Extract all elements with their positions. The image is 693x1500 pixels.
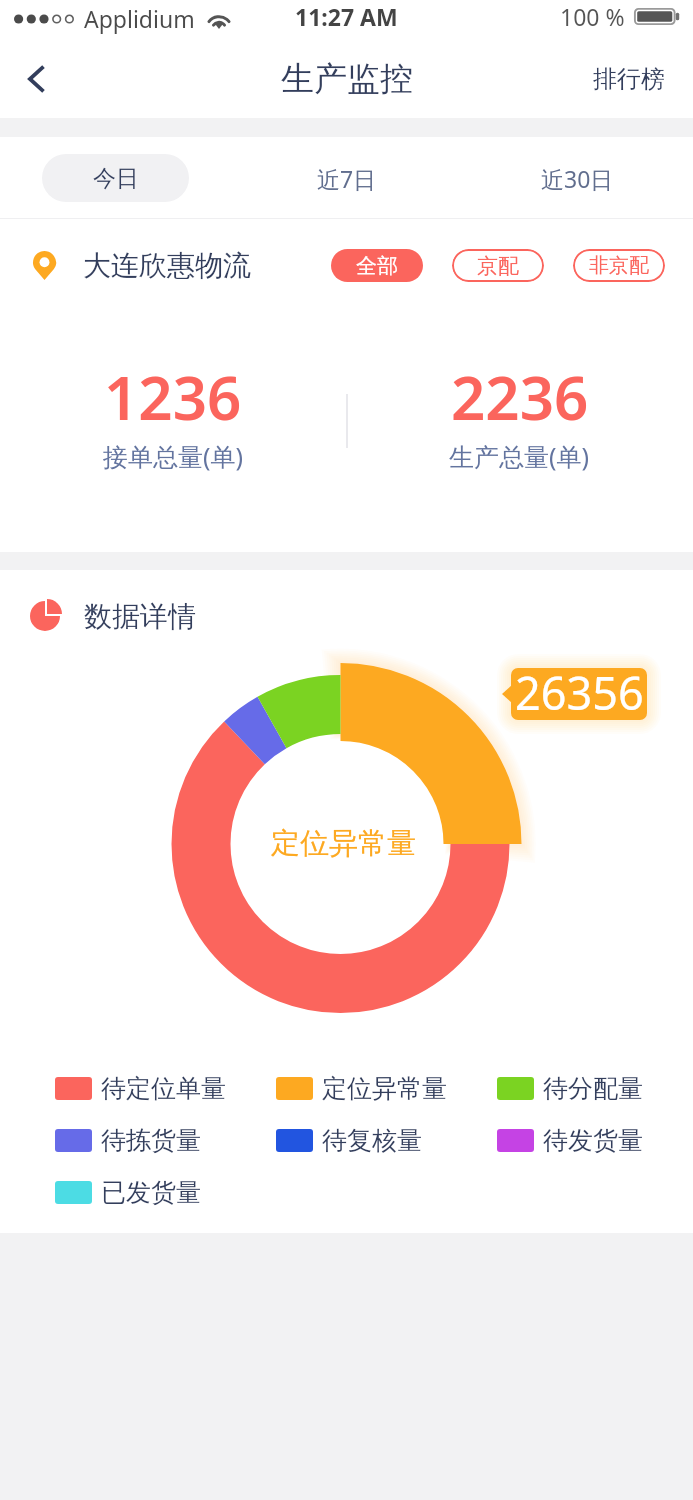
button[interactable]: 近7日	[273, 154, 420, 202]
staticText: 大连欣惠物流	[83, 248, 251, 283]
staticText: 100 %	[560, 1, 625, 32]
button[interactable]: 非京配	[573, 249, 665, 282]
staticText: Applidium	[84, 3, 195, 34]
staticText: 待发货量	[543, 1125, 643, 1156]
staticText: 待拣货量	[101, 1125, 201, 1156]
staticText: 待定位单量	[101, 1073, 226, 1104]
button[interactable]: 待定位单量	[55, 1062, 276, 1114]
staticText: 待复核量	[322, 1125, 422, 1156]
button[interactable]: 全部	[331, 249, 423, 282]
staticText: 非京配	[589, 253, 649, 278]
staticText: 2236	[451, 356, 589, 438]
staticText: 已发货量	[101, 1177, 201, 1208]
button[interactable]: 京配	[452, 249, 544, 282]
staticText: 待分配量	[543, 1073, 643, 1104]
button[interactable]: 近30日	[504, 154, 651, 202]
button[interactable]: 待分配量	[497, 1062, 693, 1114]
button[interactable]: Back	[0, 40, 66, 118]
button[interactable]: 待拣货量	[55, 1114, 276, 1166]
button[interactable]: 已发货量	[55, 1166, 276, 1218]
staticText: 接单总量(单)	[103, 439, 244, 473]
button[interactable]: 排行榜	[583, 40, 693, 118]
button[interactable]: 待发货量	[497, 1114, 693, 1166]
staticText: 京配	[477, 253, 519, 279]
staticText: 生产总量(单)	[449, 439, 590, 473]
staticText: 近30日	[541, 163, 614, 194]
staticText: 26356	[515, 668, 644, 714]
staticText: 11:27 AM	[295, 1, 398, 32]
staticText: 全部	[356, 253, 398, 279]
staticText: 定位异常量	[322, 1073, 447, 1104]
staticText: 1236	[104, 356, 242, 438]
staticText: 排行榜	[593, 64, 665, 94]
button[interactable]: 待复核量	[276, 1114, 497, 1166]
staticText: 数据详情	[84, 599, 196, 634]
staticText: 生产监控	[281, 58, 413, 100]
button[interactable]: 定位异常量	[276, 1062, 497, 1114]
staticText: 近7日	[317, 163, 377, 194]
button[interactable]: 今日	[42, 154, 189, 202]
staticText: 今日	[93, 164, 139, 193]
staticText: 定位异常量	[271, 825, 416, 862]
